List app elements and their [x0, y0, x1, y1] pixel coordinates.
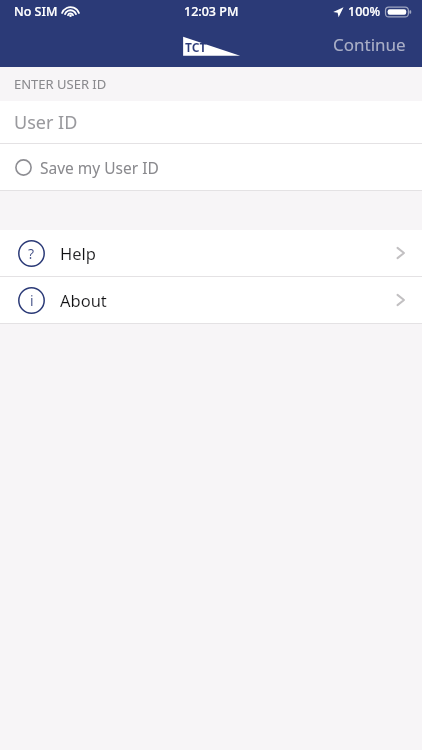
staticText: 12:03 PM — [184, 3, 239, 20]
staticText: Continue — [333, 33, 406, 56]
staticText: ? — [28, 244, 35, 263]
staticText: No SIM — [14, 3, 58, 20]
staticText: 100% — [348, 3, 381, 20]
button[interactable]: Continue — [317, 25, 422, 64]
button[interactable]: User ID — [0, 101, 422, 143]
staticText: i — [30, 291, 34, 310]
staticText: Help — [60, 242, 96, 264]
button[interactable]: ? — [0, 230, 422, 276]
staticText: About — [60, 289, 107, 311]
staticText: ENTER USER ID — [14, 75, 107, 93]
button[interactable]: i — [0, 277, 422, 323]
button[interactable]: Save my User ID — [0, 144, 422, 190]
staticText: User ID — [14, 110, 78, 135]
staticText: TCT — [185, 39, 207, 55]
staticText: Save my User ID — [40, 157, 159, 178]
